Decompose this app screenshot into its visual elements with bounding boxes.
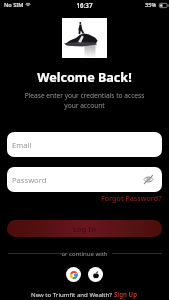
- button[interactable]: Email: [7, 132, 162, 157]
- button[interactable]: Log In: [7, 220, 162, 237]
- button[interactable]: Continue with Apple: [88, 267, 103, 282]
- staticText: Email: [12, 140, 32, 150]
- staticText: 35%: [145, 1, 157, 9]
- staticText: New to Triumfit and Wealth?: [31, 290, 114, 298]
- button[interactable]: Password: [7, 167, 162, 192]
- button[interactable]: Continue with Google: [66, 267, 81, 282]
- button[interactable]: Forgot Password?: [82, 193, 162, 205]
- staticText: 16:37: [0, 1, 169, 9]
- staticText: No SIM: [4, 1, 24, 9]
- staticText: or continue with: [0, 250, 169, 258]
- staticText: Forgot Password?: [101, 194, 162, 204]
- button[interactable]: Show password: [143, 174, 154, 185]
- staticText: Password: [12, 175, 47, 185]
- button[interactable]: Sign Up: [114, 290, 138, 298]
- staticText: Log In: [73, 224, 96, 234]
- staticText: Welcome Back!: [0, 69, 169, 86]
- staticText: Please enter your credentials to access …: [20, 91, 149, 110]
